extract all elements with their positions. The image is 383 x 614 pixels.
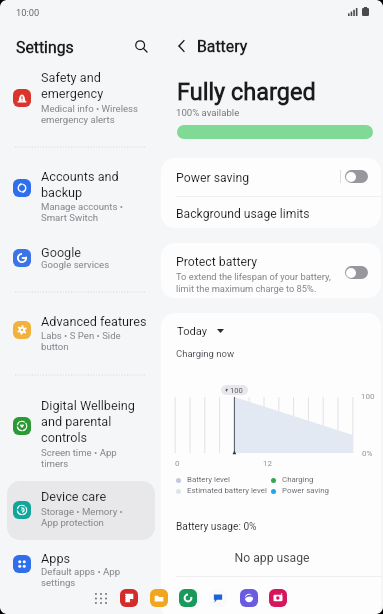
staticText: Background usage limits [176,207,310,221]
button[interactable] [161,243,381,298]
staticText: Digital Wellbeing and parental controls [41,398,153,445]
button[interactable] [7,236,155,280]
staticText: Google [41,245,153,260]
button[interactable] [161,197,381,228]
staticText: Accounts and backup [41,169,153,200]
staticText: Medical info • Wireless emergency alerts [41,103,153,125]
staticText: Power saving [176,171,250,185]
staticText: Estimated battery level [187,486,267,495]
staticText: Labs • S Pen • Side button [41,330,153,352]
button[interactable] [7,160,155,230]
staticText: Default apps • App settings [41,566,153,588]
staticText: Advanced features [41,314,153,329]
staticText: 0 [175,458,180,467]
staticText: Apps [41,551,153,566]
button[interactable]: Toggle off [345,170,368,183]
staticText: Device care [41,489,153,504]
button[interactable] [7,62,155,140]
button[interactable]: Phone [179,589,197,607]
staticText: 0% [362,448,373,457]
button[interactable] [173,324,227,340]
staticText: Safety and emergency [41,70,153,101]
button[interactable]: My Files [150,589,168,607]
staticText: Charging [282,475,314,484]
staticText: Today [177,325,208,338]
staticText: Storage • Memory • App protection [41,506,153,528]
staticText: 100 [361,391,375,400]
button[interactable]: All apps [91,588,111,608]
staticText: Settings [16,38,74,57]
button[interactable] [7,390,155,478]
staticText: Power saving [282,486,330,495]
button[interactable] [161,158,381,197]
button[interactable]: Messages [209,589,227,607]
staticText: Google services [41,259,153,270]
staticText: Battery [197,37,248,56]
staticText: 100% available [176,107,240,118]
staticText: 10:00 [16,7,40,18]
button[interactable]: Camera [269,589,287,607]
button[interactable]: Toggle off [345,266,368,279]
staticText: Battery level [187,475,230,484]
button[interactable] [7,305,155,367]
button[interactable]: Samsung Notes [120,589,138,607]
staticText: Fully charged [177,78,316,106]
staticText: Manage accounts • Smart Switch [41,201,153,223]
button[interactable]: Search [128,33,154,59]
staticText: No app usage [176,551,368,565]
staticText: Screen time • App timers [41,447,153,469]
staticText: Charging now [176,348,235,359]
staticText: To extend the lifespan of your battery, … [176,271,331,295]
button[interactable] [7,543,155,593]
button[interactable] [7,481,155,540]
staticText: 100 [230,386,243,395]
button[interactable]: Back [173,33,189,59]
button[interactable]: Internet [240,589,258,607]
staticText: 12 [263,458,273,467]
staticText: Battery usage: 0% [176,521,257,533]
staticText: Protect battery [176,255,258,269]
